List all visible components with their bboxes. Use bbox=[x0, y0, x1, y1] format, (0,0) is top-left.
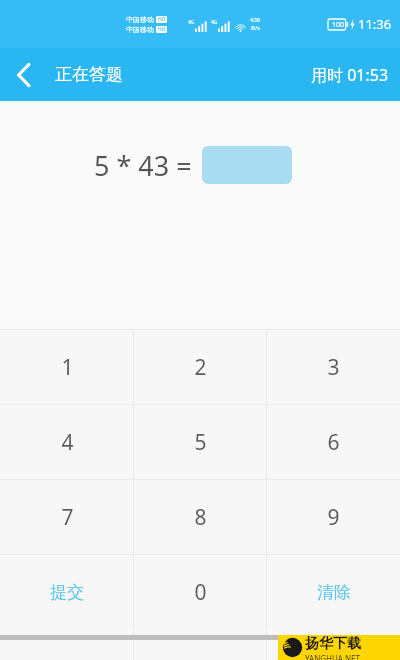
staticText: 2 bbox=[194, 353, 207, 382]
staticText: 6 bbox=[327, 428, 340, 457]
staticText: 9 bbox=[327, 503, 340, 532]
staticText: HD bbox=[158, 26, 166, 33]
staticText: 正在答题 bbox=[55, 64, 123, 85]
button[interactable]: 提交 bbox=[0, 555, 134, 629]
staticText: 4G bbox=[188, 19, 195, 26]
button[interactable]: 2 bbox=[134, 330, 267, 404]
staticText: YANGHUA.NET bbox=[305, 653, 360, 660]
button[interactable]: Back bbox=[0, 51, 48, 99]
button[interactable]: 5 bbox=[134, 405, 267, 479]
button[interactable]: 6 bbox=[267, 405, 400, 479]
staticText: 中国移动 bbox=[126, 25, 154, 34]
button[interactable]: 0 bbox=[134, 555, 267, 629]
staticText: 0 bbox=[194, 578, 207, 607]
staticText: 5 bbox=[194, 428, 207, 457]
staticText: 100 bbox=[332, 20, 345, 30]
staticText: 提交 bbox=[50, 582, 84, 603]
staticText: 7 bbox=[61, 503, 74, 532]
button[interactable]: 清除 bbox=[267, 555, 400, 629]
button[interactable]: 4 bbox=[0, 405, 134, 479]
staticText: 中国移动 bbox=[126, 15, 154, 24]
staticText: 439 bbox=[250, 16, 261, 24]
button[interactable]: 3 bbox=[267, 330, 400, 404]
staticText: 4 bbox=[61, 428, 74, 457]
staticText: 8 bbox=[194, 503, 207, 532]
staticText: B/s bbox=[251, 24, 261, 32]
staticText: HD bbox=[158, 16, 166, 23]
staticText: 11:36 bbox=[358, 15, 392, 33]
staticText: 1 bbox=[61, 353, 74, 382]
staticText: 3 bbox=[327, 353, 340, 382]
button[interactable]: Answer input bbox=[202, 146, 292, 184]
button[interactable]: 8 bbox=[134, 480, 267, 554]
staticText: 5 * 43 = bbox=[94, 147, 192, 184]
button[interactable]: 1 bbox=[0, 330, 134, 404]
staticText: 清除 bbox=[317, 582, 351, 603]
button[interactable]: 9 bbox=[267, 480, 400, 554]
button[interactable]: 7 bbox=[0, 480, 134, 554]
staticText: 扬华下载 bbox=[305, 635, 361, 653]
staticText: 用时 01:53 bbox=[311, 64, 389, 86]
staticText: 4G bbox=[211, 19, 218, 26]
